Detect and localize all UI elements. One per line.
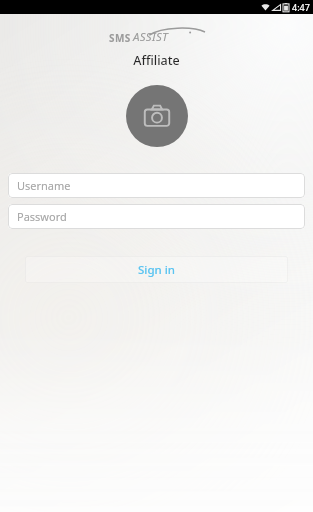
button[interactable]: Add profile photo <box>126 85 188 147</box>
staticText: Sign in <box>138 262 176 278</box>
button[interactable]: Username <box>8 173 305 198</box>
staticText: Password <box>17 209 67 224</box>
staticText: 4:47 <box>292 1 310 13</box>
staticText: SMS <box>109 31 131 45</box>
staticText: ASSIST <box>133 29 169 45</box>
staticText: Affiliate <box>8 52 305 69</box>
staticText: Username <box>17 178 71 193</box>
button[interactable]: Password <box>8 204 305 229</box>
button[interactable]: Sign in <box>25 256 288 283</box>
